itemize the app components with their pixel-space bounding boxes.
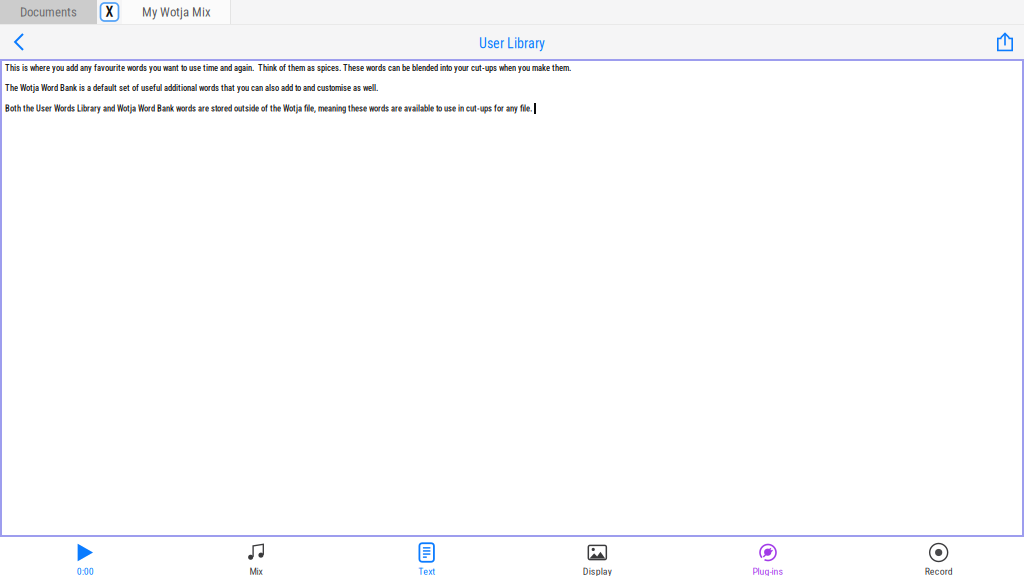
staticText: Text <box>418 566 435 576</box>
button[interactable]: Back <box>0 25 38 59</box>
staticText: X <box>105 4 113 20</box>
button[interactable]: Close document <box>97 0 122 24</box>
button[interactable]: Text <box>341 537 512 576</box>
staticText: Both the User Words Library and Wotja Wo… <box>5 103 532 113</box>
button[interactable]: My Wotja Mix <box>122 0 231 24</box>
staticText: The Wotja Word Bank is a default set of … <box>5 83 378 93</box>
staticText: Plug-ins <box>752 566 783 576</box>
staticText: Record <box>925 566 953 576</box>
staticText: User Library <box>479 35 545 52</box>
button[interactable]: Plug-ins <box>683 537 853 576</box>
staticText: This is where you add any favourite word… <box>5 63 571 73</box>
button[interactable]: Share <box>986 25 1024 59</box>
staticText: 0:00 <box>77 566 94 576</box>
staticText: Documents <box>20 4 77 19</box>
staticText: Mix <box>249 566 262 576</box>
button[interactable]: Mix <box>171 537 341 576</box>
button[interactable]: 0:00 <box>0 537 171 576</box>
button[interactable]: Documents <box>0 0 97 24</box>
staticText: Display <box>583 566 612 576</box>
button[interactable]: Record <box>853 537 1024 576</box>
staticText: My Wotja Mix <box>142 4 211 19</box>
button[interactable]: Display <box>512 537 683 576</box>
